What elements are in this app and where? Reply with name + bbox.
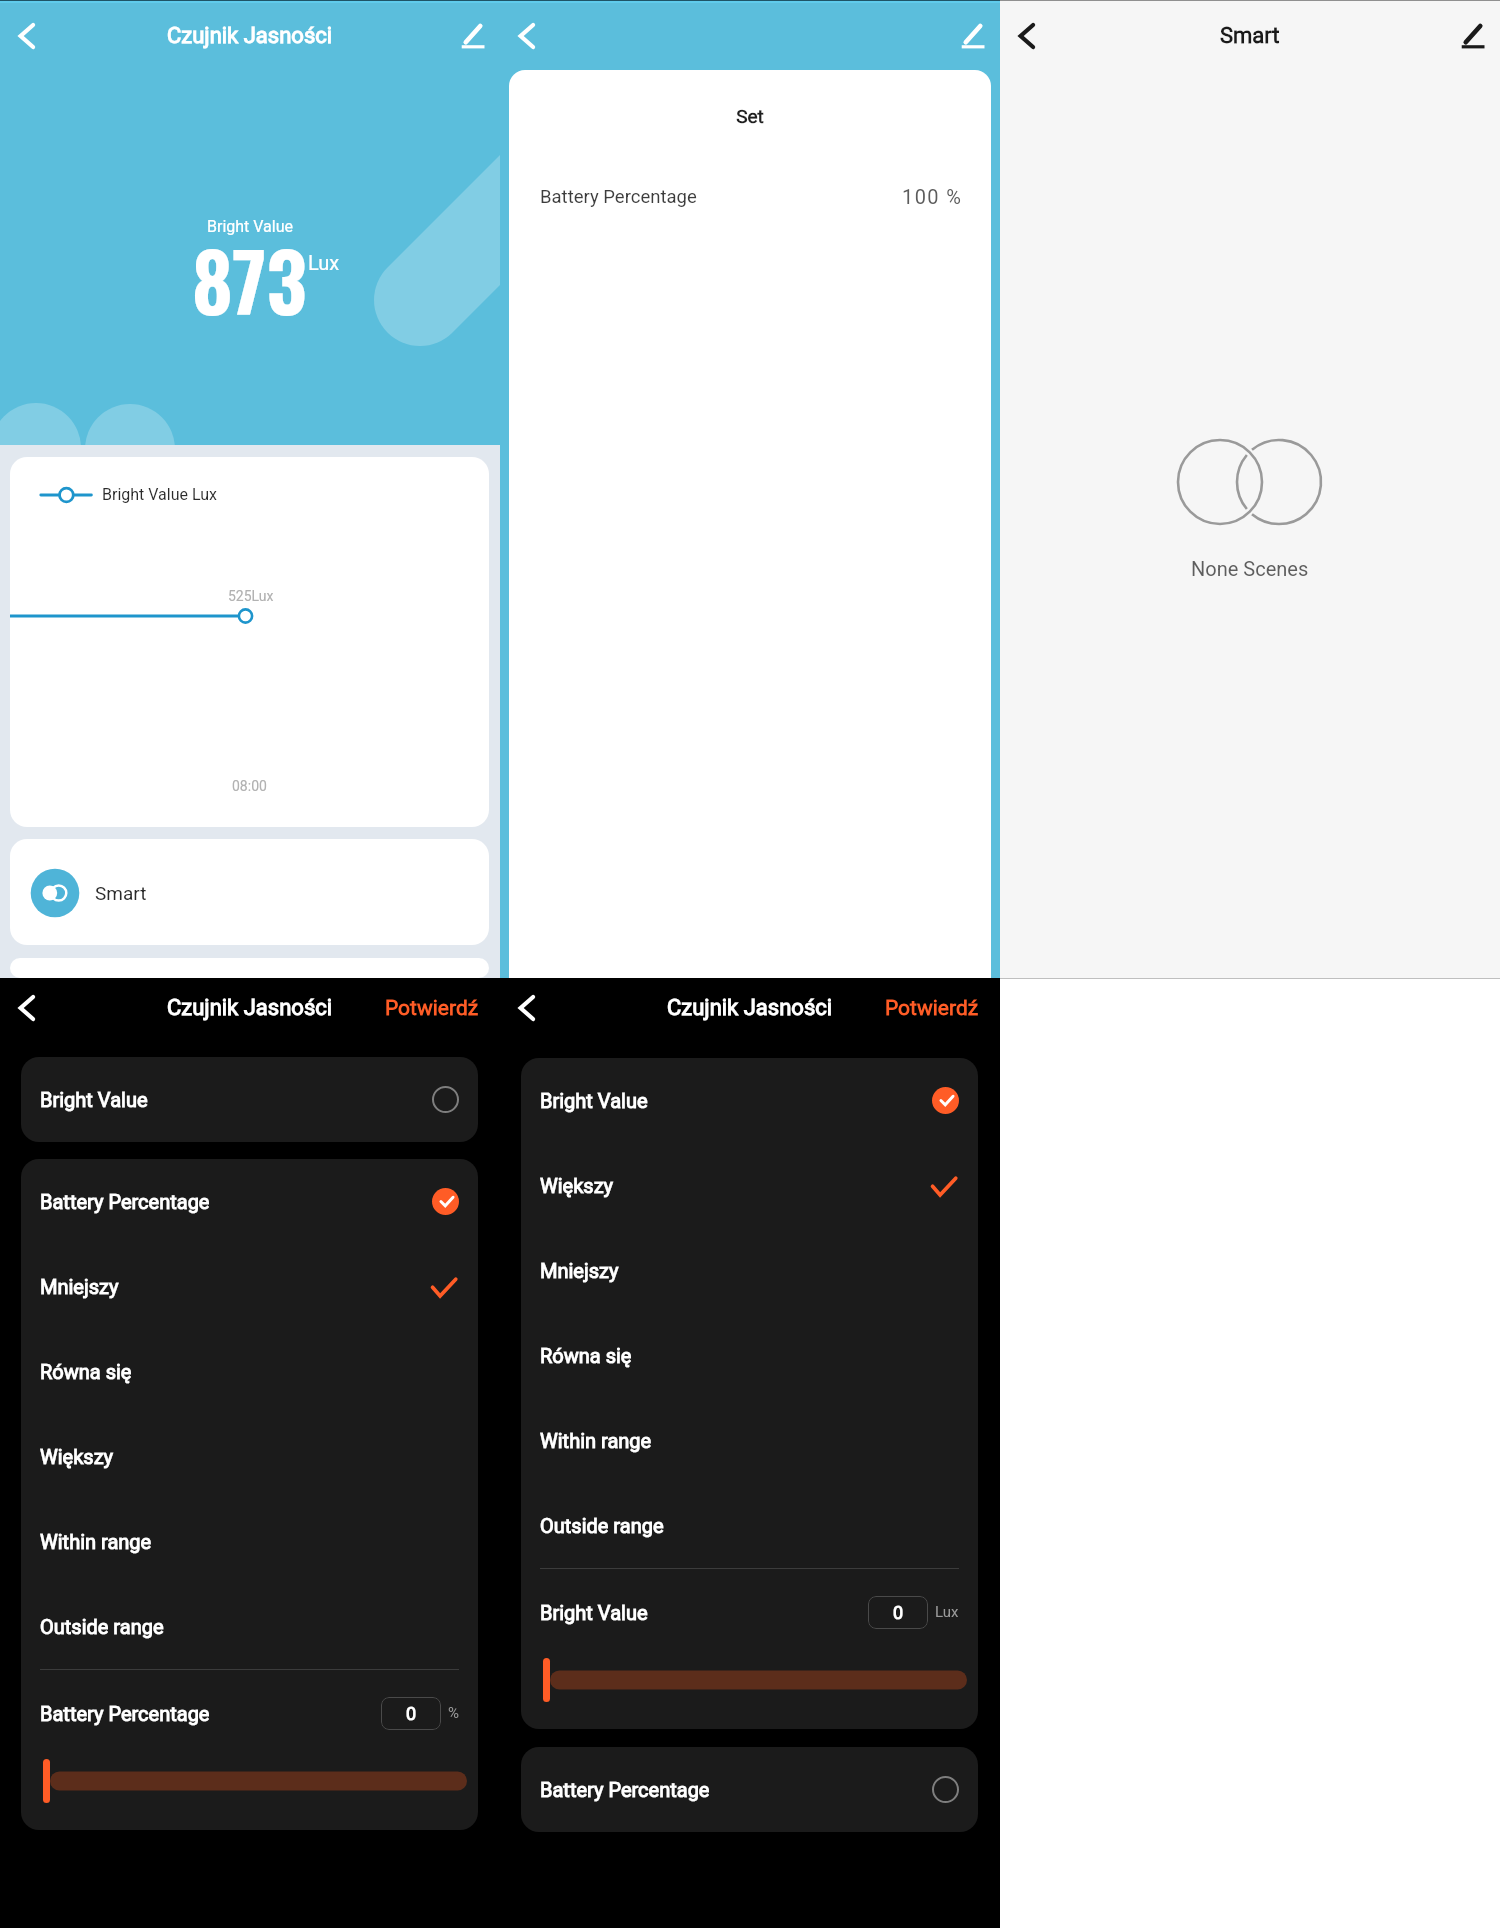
staticText: 873 [192,220,308,339]
staticText: Mniejszy [40,1275,119,1298]
staticText: 0 [893,1602,904,1623]
staticText: Czujnik Jasności [167,23,333,49]
staticText: None Scenes [1191,557,1309,580]
button[interactable]: Równa się [521,1313,978,1398]
staticText: Czujnik Jasności [667,995,833,1021]
staticText: Bright Value [540,1601,648,1624]
staticText: Lux [935,1603,959,1621]
button[interactable]: Potwierdź [385,996,479,1021]
staticText: Battery Percentage [540,186,697,208]
button[interactable]: Większy [521,1143,978,1228]
button[interactable]: Edit [954,17,992,55]
button[interactable]: Back [1008,17,1046,55]
staticText: Outside range [540,1514,664,1537]
staticText: 525Lux [228,588,274,604]
button[interactable]: Within range [521,1398,978,1483]
staticText: Potwierdź [885,996,979,1021]
staticText: Smart [1220,23,1280,49]
staticText: Set [509,105,991,127]
staticText: Bright Value [207,217,294,236]
button[interactable]: Outside range [21,1584,478,1669]
button[interactable]: Równa się [21,1329,478,1414]
staticText: Czujnik Jasności [167,995,333,1021]
staticText: Równa się [540,1344,632,1367]
button[interactable]: Battery Percentage [21,1159,478,1244]
staticText: Within range [40,1530,152,1553]
button[interactable]: 0 [868,1596,928,1629]
staticText: Bright Value Lux [102,485,218,504]
button[interactable]: Within range [21,1499,478,1584]
staticText: 0 [406,1703,417,1724]
staticText: Mniejszy [540,1259,619,1282]
staticText: Lux [308,251,340,274]
staticText: Battery Percentage [40,1702,210,1725]
staticText: 08:00 [232,778,267,794]
button[interactable]: Potwierdź [885,996,979,1021]
staticText: Większy [540,1174,614,1197]
staticText: Battery Percentage [540,1778,710,1801]
button[interactable]: Back [8,989,46,1027]
staticText: % [448,1704,459,1722]
button[interactable]: Battery Percentage [521,1747,978,1832]
staticText: Bright Value [540,1089,648,1112]
button[interactable]: Edit [454,17,492,55]
staticText: Outside range [40,1615,164,1638]
staticText: Battery Percentage [40,1190,210,1213]
staticText: Smart [95,882,147,904]
button[interactable]: Smart [10,839,489,945]
staticText: Within range [540,1429,652,1452]
staticText: Większy [40,1445,114,1468]
staticText: Potwierdź [385,996,479,1021]
staticText: Równa się [40,1360,132,1383]
button[interactable]: Bright Value [21,1057,478,1142]
button[interactable]: Edit [1454,17,1492,55]
button[interactable]: Większy [21,1414,478,1499]
button[interactable]: Mniejszy [21,1244,478,1329]
button[interactable]: Outside range [521,1483,978,1568]
button[interactable]: 0 [381,1697,441,1730]
button[interactable]: Back [8,17,46,55]
button[interactable]: Back [508,989,546,1027]
button[interactable]: Bright Value [521,1058,978,1143]
button[interactable]: Back [508,17,546,55]
staticText: Bright Value [40,1088,148,1111]
button[interactable]: Mniejszy [521,1228,978,1313]
staticText: 100 % [902,185,963,208]
